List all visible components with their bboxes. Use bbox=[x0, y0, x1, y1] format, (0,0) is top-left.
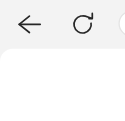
button[interactable]: Back bbox=[13, 8, 45, 40]
button[interactable]: Refresh bbox=[67, 8, 99, 40]
button[interactable]: More options bbox=[115, 8, 125, 40]
